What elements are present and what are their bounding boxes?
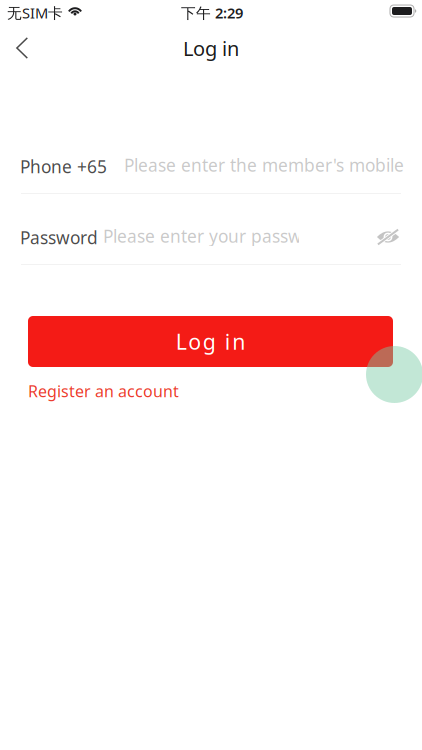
staticText: 无SIM卡 [7, 3, 63, 22]
button[interactable]: Log in [28, 316, 393, 367]
staticText: Phone +65 [20, 155, 107, 178]
staticText: Please enter the member's mobile phone n… [124, 153, 422, 176]
button[interactable]: Show password [366, 218, 410, 256]
staticText: 下午 2:29 [181, 3, 243, 22]
button[interactable]: Phone +65 [20, 149, 400, 189]
button[interactable]: Register an account [28, 378, 188, 404]
staticText: Log in [176, 327, 245, 356]
staticText: Password [20, 226, 98, 249]
staticText: Please enter your password [103, 224, 330, 247]
button[interactable]: Password [20, 220, 400, 260]
staticText: Register an account [28, 380, 179, 402]
button[interactable]: Back [0, 26, 44, 70]
staticText: Log in [183, 35, 239, 62]
